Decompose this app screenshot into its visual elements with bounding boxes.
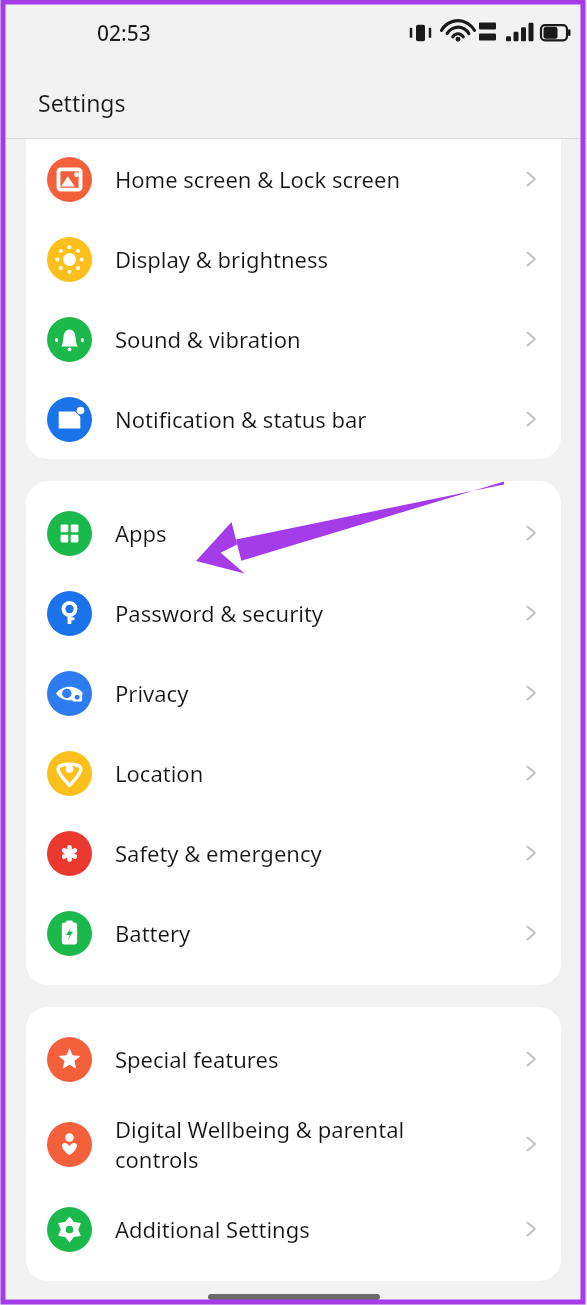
button[interactable]: Sound & vibration	[26, 299, 561, 379]
staticText: Display & brightness	[115, 244, 513, 274]
button[interactable]: Special features	[26, 1019, 561, 1099]
staticText: Location	[115, 758, 513, 788]
button[interactable]: Safety & emergency	[26, 813, 561, 893]
staticText: Special features	[115, 1044, 513, 1074]
staticText: Notification & status bar	[115, 404, 513, 434]
staticText: Password & security	[115, 598, 513, 628]
staticText: Sound & vibration	[115, 324, 513, 354]
button[interactable]: Additional Settings	[26, 1189, 561, 1269]
button[interactable]: Battery	[26, 893, 561, 973]
staticText: Additional Settings	[115, 1214, 513, 1244]
staticText: Settings	[38, 87, 126, 118]
staticText: Privacy	[115, 678, 513, 708]
button[interactable]: Apps	[26, 493, 561, 573]
staticText: Battery	[115, 918, 513, 948]
staticText: 02:53	[97, 19, 151, 48]
staticText: Apps	[115, 518, 513, 548]
button[interactable]: Notification & status bar	[26, 379, 561, 459]
staticText: Digital Wellbeing & parental controls	[115, 1114, 513, 1175]
button[interactable]: Digital Wellbeing & parental controls	[26, 1099, 561, 1189]
button[interactable]: Privacy	[26, 653, 561, 733]
button[interactable]: Password & security	[26, 573, 561, 653]
staticText: Home screen & Lock screen	[115, 164, 513, 194]
button[interactable]: Display & brightness	[26, 219, 561, 299]
staticText: Safety & emergency	[115, 838, 513, 868]
button[interactable]: Home screen & Lock screen	[26, 139, 561, 219]
button[interactable]: Location	[26, 733, 561, 813]
